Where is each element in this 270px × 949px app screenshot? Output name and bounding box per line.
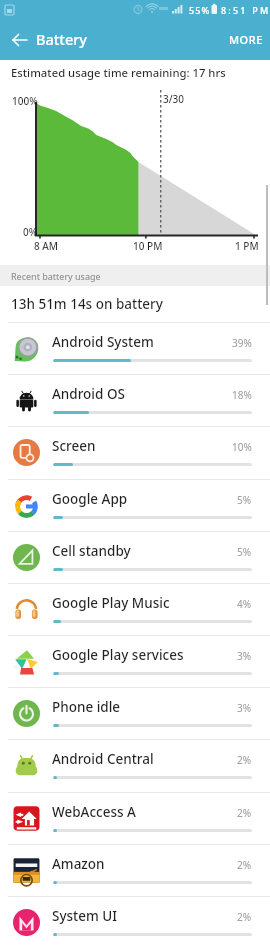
staticText: Android OS xyxy=(52,385,125,403)
button[interactable]: Amazon xyxy=(0,844,270,896)
staticText: WebAccess A xyxy=(52,803,136,821)
staticText: Android System xyxy=(52,333,154,351)
staticText: 39% xyxy=(232,336,252,350)
staticText: Cell standby xyxy=(52,542,131,560)
staticText: 3% xyxy=(237,649,252,663)
staticText: 4% xyxy=(237,597,252,611)
staticText: Screen xyxy=(52,437,96,455)
staticText: 2% xyxy=(237,858,252,872)
staticText: MORE xyxy=(229,32,263,47)
staticText: 10 PM xyxy=(133,239,163,253)
button[interactable]: Android Central xyxy=(0,739,270,791)
staticText: Recent battery usage xyxy=(11,270,101,282)
button[interactable]: WebAccess A xyxy=(0,792,270,844)
staticText: Phone idle xyxy=(52,698,121,716)
staticText: 5% xyxy=(237,545,252,559)
button[interactable]: Google App xyxy=(0,479,270,531)
staticText: System UI xyxy=(52,907,118,925)
button[interactable]: Phone idle xyxy=(0,687,270,739)
staticText: 3% xyxy=(237,701,252,715)
staticText: 55% xyxy=(189,4,211,16)
staticText: 5% xyxy=(237,493,252,507)
staticText: 2% xyxy=(237,806,252,820)
staticText: 0% xyxy=(23,225,38,239)
staticText: 100% xyxy=(12,94,38,108)
button[interactable]: Cell standby xyxy=(0,531,270,583)
staticText: Android Central xyxy=(52,750,154,768)
staticText: 3/30 xyxy=(163,92,185,106)
staticText: 8 AM xyxy=(34,239,59,253)
staticText: 2% xyxy=(237,753,252,767)
staticText: Battery xyxy=(36,29,87,49)
staticText: Google App xyxy=(52,490,128,508)
button[interactable]: Google Play services xyxy=(0,635,270,687)
button[interactable]: System UI xyxy=(0,896,270,948)
staticText: 18% xyxy=(232,388,252,402)
button[interactable]: Android System xyxy=(0,322,270,374)
staticText: 2% xyxy=(237,910,252,924)
button[interactable]: Navigate up xyxy=(4,24,36,56)
staticText: 1 PM xyxy=(235,239,259,253)
button[interactable]: Google Play Music xyxy=(0,583,270,635)
staticText: Google Play Music xyxy=(52,594,170,612)
button[interactable]: Android OS xyxy=(0,374,270,426)
button[interactable]: Screen xyxy=(0,426,270,478)
staticText: 13h 51m 14s on battery xyxy=(11,295,163,313)
staticText: Amazon xyxy=(52,855,105,873)
staticText: 10% xyxy=(232,440,252,454)
staticText: Google Play services xyxy=(52,646,184,664)
button[interactable]: MORE xyxy=(222,24,270,55)
staticText: Estimated usage time remaining: 17 hrs xyxy=(11,65,226,80)
staticText: 8:51 PM xyxy=(221,4,270,16)
